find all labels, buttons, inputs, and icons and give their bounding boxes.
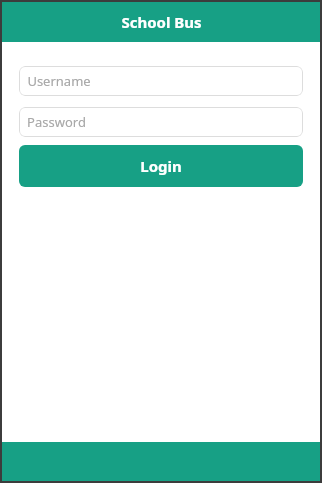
staticText: Password — [27, 113, 86, 131]
staticText: Username — [27, 72, 91, 90]
button[interactable]: Username — [19, 66, 303, 96]
button[interactable]: Login — [19, 145, 303, 187]
button[interactable]: Password — [19, 107, 303, 137]
staticText: School Bus — [121, 12, 202, 32]
staticText: Login — [140, 156, 182, 176]
